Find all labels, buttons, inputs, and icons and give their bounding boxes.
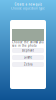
staticText: Zebra: [24, 63, 32, 66]
staticText: Create a new quiz: [14, 3, 41, 6]
button[interactable]: Giraffe: [12, 55, 44, 60]
button[interactable]: Elephant: [12, 48, 44, 53]
staticText: Elephant: [22, 49, 34, 52]
button[interactable]: Zebra: [12, 62, 44, 67]
staticText: Giraffe: [23, 56, 32, 59]
staticText: Choose a question type: [11, 7, 45, 10]
staticText: Choose the animal you see in the photo: [12, 40, 44, 48]
